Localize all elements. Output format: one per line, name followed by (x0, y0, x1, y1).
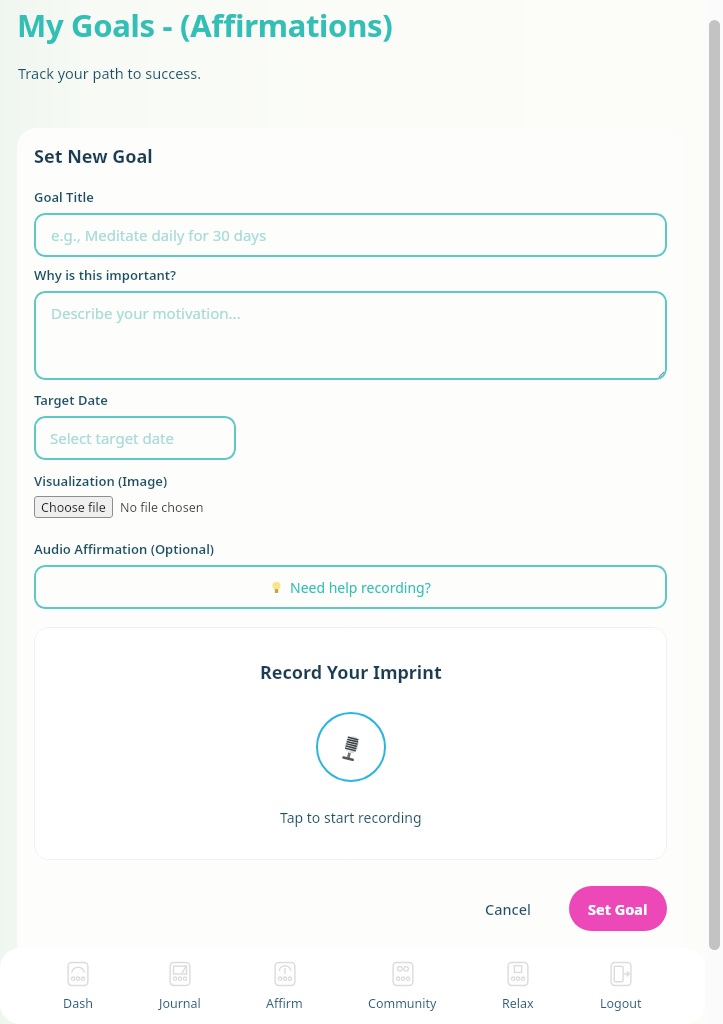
staticText: Affirm (266, 995, 303, 1012)
staticText: Dash (63, 995, 93, 1012)
staticText: Relax (502, 995, 534, 1012)
staticText: Need help recording? (290, 578, 431, 597)
button[interactable]: Need help recording? (34, 565, 667, 609)
staticText: Audio Affirmation (Optional) (34, 540, 215, 558)
staticText: Record Your Imprint (260, 660, 442, 685)
staticText: Cancel (485, 899, 531, 919)
staticText: Track your path to success. (18, 63, 202, 83)
staticText: Choose file (41, 499, 106, 516)
button[interactable]: Affirm (260, 959, 309, 1014)
staticText: Why is this important? (34, 266, 177, 284)
staticText: Journal (159, 995, 201, 1012)
staticText: Community (368, 995, 437, 1012)
button[interactable]: Set Goal (569, 886, 667, 931)
button[interactable]: Cancel (475, 891, 541, 927)
staticText: Set Goal (588, 899, 648, 919)
button[interactable]: Tap to start recording (316, 712, 386, 782)
staticText: Select target date (50, 428, 174, 448)
button[interactable]: Relax (496, 959, 540, 1014)
staticText: Describe your motivation... (51, 303, 241, 323)
staticText: Tap to start recording (280, 808, 422, 827)
staticText: My Goals - (Affirmations) (17, 4, 393, 46)
staticText: Target Date (34, 391, 108, 409)
button[interactable]: Community (362, 959, 443, 1014)
button[interactable]: Dash (57, 959, 99, 1014)
button[interactable]: Logout (594, 959, 648, 1014)
button[interactable]: Describe your motivation... (34, 291, 667, 380)
staticText: No file chosen (120, 499, 204, 516)
staticText: Visualization (Image) (34, 472, 168, 490)
staticText: e.g., Meditate daily for 30 days (51, 225, 267, 245)
button[interactable]: e.g., Meditate daily for 30 days (34, 213, 667, 257)
button[interactable]: Journal (153, 959, 207, 1014)
button[interactable]: Choose file (34, 496, 113, 518)
staticText: Logout (600, 995, 642, 1012)
staticText: Set New Goal (34, 144, 153, 169)
staticText: Goal Title (34, 188, 94, 206)
button[interactable]: Select target date (34, 416, 236, 460)
